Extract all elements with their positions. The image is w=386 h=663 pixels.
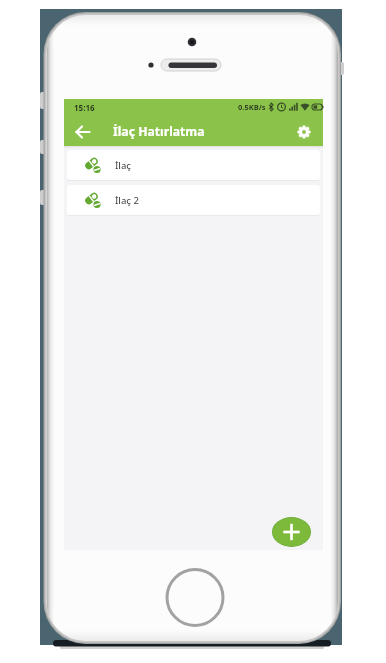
- staticText: 15:16: [74, 102, 95, 113]
- staticText: İlaç Hatırlatma: [113, 123, 205, 140]
- button[interactable]: [64, 117, 102, 146]
- staticText: İlaç: [115, 159, 132, 172]
- staticText: 0.5KB/s: [238, 102, 266, 112]
- button[interactable]: [272, 517, 311, 547]
- button[interactable]: [290, 117, 317, 146]
- staticText: İlaç 2: [115, 194, 139, 207]
- button[interactable]: İlaç 2: [67, 185, 320, 215]
- button[interactable]: İlaç: [67, 150, 320, 180]
